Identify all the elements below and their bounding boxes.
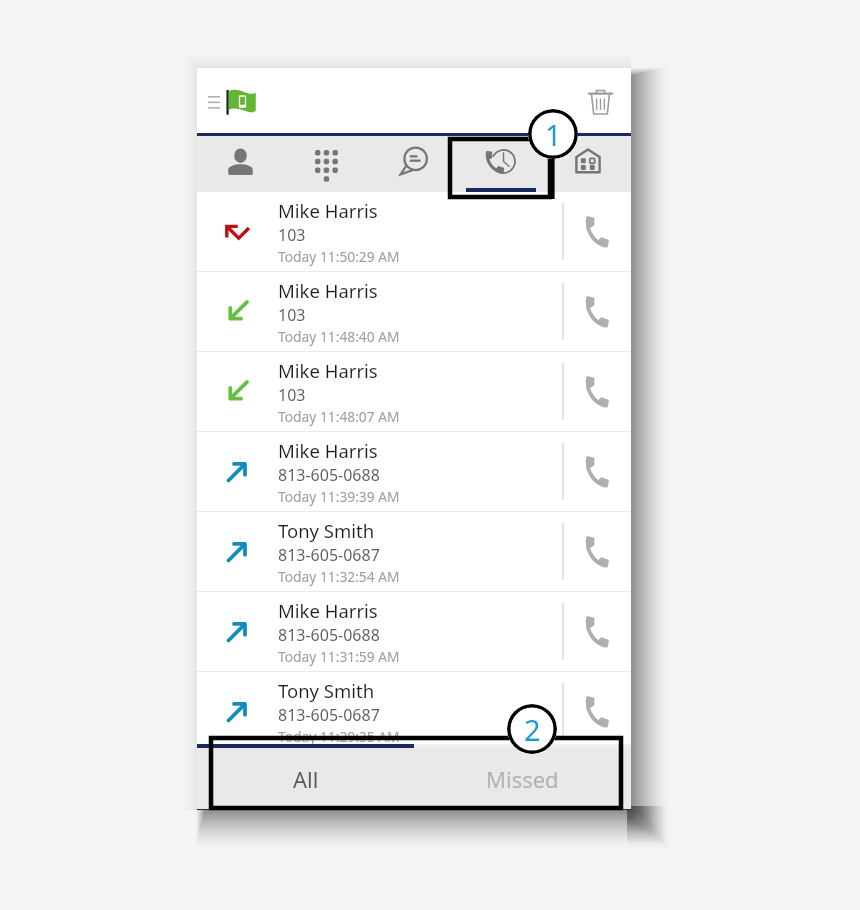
staticText: Today 11:50:29 AM	[278, 247, 400, 266]
staticText: Today 11:29:35 AM	[278, 727, 400, 746]
button[interactable]: Call Mike Harris	[562, 432, 631, 511]
button[interactable]: Mike Harris	[197, 592, 631, 671]
button[interactable]: Apps	[544, 136, 631, 192]
button[interactable]: Dialpad	[283, 136, 370, 192]
button[interactable]: Tony Smith	[197, 672, 631, 751]
staticText: 1	[545, 115, 562, 154]
staticText: 813-605-0688	[278, 464, 380, 486]
button[interactable]: Mike Harris	[197, 272, 631, 351]
staticText: 103	[278, 384, 306, 406]
staticText: 103	[278, 304, 306, 326]
staticText: Today 11:31:59 AM	[278, 647, 400, 666]
staticText: Mike Harris	[278, 598, 378, 623]
staticText: Tony Smith	[278, 518, 375, 543]
button[interactable]: Tony Smith	[197, 512, 631, 591]
staticText: Today 11:48:07 AM	[278, 407, 400, 426]
button[interactable]: Delete	[579, 81, 621, 123]
staticText: 813-605-0687	[278, 704, 380, 726]
staticText: 813-605-0687	[278, 544, 380, 566]
staticText: Today 11:48:40 AM	[278, 327, 400, 346]
button[interactable]: Mike Harris	[197, 432, 631, 511]
button[interactable]: Missed	[414, 748, 631, 809]
button[interactable]: All	[197, 748, 414, 809]
staticText: All	[293, 764, 319, 794]
staticText: Mike Harris	[278, 198, 378, 223]
button[interactable]: Recents	[457, 136, 544, 192]
staticText: 813-605-0688	[278, 624, 380, 646]
staticText: Missed	[486, 764, 559, 794]
button[interactable]: Mike Harris	[197, 192, 631, 271]
staticText: Tony Smith	[278, 678, 375, 703]
button[interactable]: Call Mike Harris	[562, 352, 631, 431]
staticText: 2	[524, 710, 541, 749]
button[interactable]: Contacts	[197, 136, 283, 192]
staticText: Mike Harris	[278, 358, 378, 383]
button[interactable]: Call Mike Harris	[562, 272, 631, 351]
staticText: Mike Harris	[278, 278, 378, 303]
staticText: 103	[278, 224, 306, 246]
button[interactable]: Call Mike Harris	[562, 192, 631, 271]
button[interactable]: Call Tony Smith	[562, 512, 631, 591]
staticText: Today 11:39:39 AM	[278, 487, 400, 506]
button[interactable]: Menu	[202, 90, 226, 114]
staticText: Today 11:32:54 AM	[278, 567, 400, 586]
button[interactable]: Mike Harris	[197, 352, 631, 431]
staticText: Mike Harris	[278, 438, 378, 463]
button[interactable]: Call Tony Smith	[562, 672, 631, 751]
button[interactable]: Call Mike Harris	[562, 592, 631, 671]
button[interactable]: Messages	[370, 136, 457, 192]
